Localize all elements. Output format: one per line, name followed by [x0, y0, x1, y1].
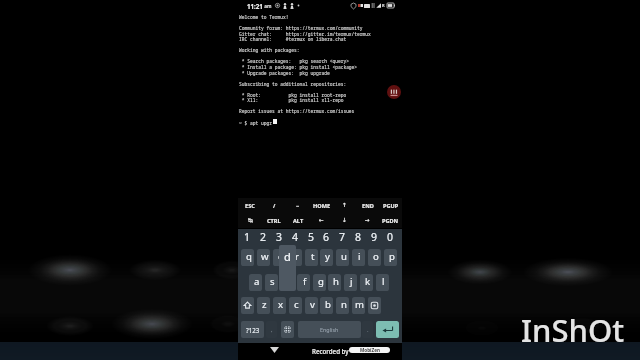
- button[interactable]: k: [360, 274, 373, 291]
- button[interactable]: Backspace: [368, 297, 381, 314]
- button[interactable]: Emoji: [281, 321, 294, 338]
- button[interactable]: ESC: [238, 198, 262, 213]
- button[interactable]: 6: [320, 230, 333, 244]
- button[interactable]: →: [356, 213, 379, 228]
- button[interactable]: t: [305, 249, 318, 266]
- button[interactable]: w: [257, 249, 270, 266]
- button[interactable]: Screen recorder: [349, 347, 390, 353]
- button[interactable]: CTRL: [262, 213, 286, 228]
- button[interactable]: 5: [305, 230, 318, 244]
- button[interactable]: 0: [384, 230, 397, 244]
- staticText: ?123: [246, 326, 260, 334]
- staticText: Recorded by: [312, 347, 349, 355]
- button[interactable]: v: [305, 297, 318, 314]
- staticText: Working with packages:: [239, 47, 300, 53]
- button[interactable]: i: [352, 249, 365, 266]
- staticText: r: [295, 250, 299, 263]
- staticText: t: [311, 250, 315, 263]
- staticText: ←: [319, 217, 324, 224]
- button[interactable]: a: [249, 274, 262, 291]
- button[interactable]: Hide keyboard: [270, 347, 279, 353]
- button[interactable]: ↓: [333, 213, 356, 228]
- button[interactable]: j: [344, 274, 357, 291]
- button[interactable]: END: [356, 198, 379, 213]
- button[interactable]: ,: [266, 321, 277, 338]
- button[interactable]: l: [376, 274, 389, 291]
- button[interactable]: PGDN: [379, 213, 402, 228]
- button[interactable]: /: [262, 198, 286, 213]
- staticText: * Root: pkg install root-repo: [239, 92, 347, 98]
- staticText: * Install a package: pkg install <packag…: [239, 64, 358, 70]
- button[interactable]: n: [336, 297, 349, 314]
- button[interactable]: ←: [310, 213, 333, 228]
- button[interactable]: 7: [336, 230, 349, 244]
- button[interactable]: ↑: [333, 198, 356, 213]
- staticText: English: [320, 326, 339, 333]
- staticText: u: [341, 250, 347, 263]
- staticText: Report issues at https://termux.com/issu…: [239, 108, 355, 114]
- button[interactable]: Enter: [376, 321, 399, 338]
- button[interactable]: g: [313, 274, 326, 291]
- button[interactable]: z: [257, 297, 270, 314]
- button[interactable]: c: [289, 297, 302, 314]
- staticText: p: [389, 250, 395, 263]
- button[interactable]: s: [265, 274, 278, 291]
- button[interactable]: 1: [241, 230, 254, 244]
- staticText: z: [262, 298, 267, 311]
- button[interactable]: 2: [257, 230, 270, 244]
- staticText: InShOt: [521, 309, 625, 351]
- staticText: 11:21: [247, 2, 263, 10]
- button[interactable]: English: [298, 321, 361, 338]
- staticText: ↑: [342, 202, 347, 209]
- button[interactable]: m: [352, 297, 365, 314]
- staticText: 8: [355, 230, 362, 244]
- button[interactable]: Shift: [241, 297, 254, 314]
- button[interactable]: Screen recorder: [387, 85, 401, 99]
- button[interactable]: 9: [368, 230, 381, 244]
- button[interactable]: 8: [352, 230, 365, 244]
- staticText: a: [254, 275, 260, 288]
- staticText: MobiZen: [360, 347, 380, 353]
- staticText: g: [318, 275, 324, 288]
- staticText: j: [350, 275, 353, 288]
- staticText: ,: [271, 326, 273, 334]
- button[interactable]: b: [320, 297, 333, 314]
- button[interactable]: o: [368, 249, 381, 266]
- staticText: y: [325, 250, 330, 263]
- staticText: 1: [244, 230, 251, 244]
- staticText: −: [296, 202, 300, 210]
- button[interactable]: p: [384, 249, 397, 266]
- button[interactable]: u: [336, 249, 349, 266]
- button[interactable]: q: [241, 249, 254, 266]
- button[interactable]: h: [328, 274, 341, 291]
- staticText: x: [278, 298, 284, 311]
- staticText: e: [278, 250, 284, 263]
- button[interactable]: 3: [273, 230, 286, 244]
- staticText: i: [358, 250, 361, 263]
- staticText: * Upgrade packages: pkg upgrade: [239, 70, 330, 76]
- staticText: m: [355, 298, 364, 311]
- button[interactable]: r: [289, 249, 302, 266]
- button[interactable]: ALT: [286, 213, 310, 228]
- button[interactable]: HOME: [310, 198, 333, 213]
- button[interactable]: x: [273, 297, 286, 314]
- button[interactable]: PGUP: [379, 198, 402, 213]
- staticText: 4: [292, 230, 299, 244]
- button[interactable]: e: [273, 249, 286, 266]
- button[interactable]: 4: [289, 230, 302, 244]
- staticText: * X11: pkg install x11-repo: [239, 97, 344, 103]
- button[interactable]: ↹: [238, 213, 262, 228]
- button[interactable]: −: [286, 198, 310, 213]
- staticText: b: [325, 298, 331, 311]
- button[interactable]: f: [297, 274, 310, 291]
- button[interactable]: ?123: [241, 321, 264, 338]
- staticText: →: [365, 217, 370, 224]
- staticText: ~ $ apt upgr: [239, 120, 272, 126]
- staticText: PGUP: [383, 202, 399, 210]
- staticText: 5: [308, 230, 315, 244]
- button[interactable]: y: [320, 249, 333, 266]
- staticText: PGDN: [382, 217, 399, 225]
